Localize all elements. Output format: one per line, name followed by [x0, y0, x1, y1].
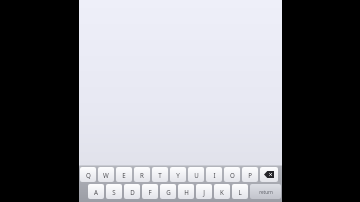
staticText: Q [86, 171, 91, 179]
button[interactable]: T [152, 167, 168, 182]
button[interactable]: O [224, 167, 240, 182]
button[interactable]: U [188, 167, 204, 182]
button[interactable]: W [98, 167, 114, 182]
button[interactable]: G [160, 184, 176, 199]
staticText: T [158, 171, 162, 179]
staticText: K [220, 188, 224, 196]
staticText: return [259, 189, 273, 195]
button[interactable]: R [134, 167, 150, 182]
staticText: W [103, 171, 109, 179]
button[interactable]: J [196, 184, 212, 199]
staticText: R [140, 171, 144, 179]
staticText: P [248, 171, 252, 179]
staticText: G [166, 188, 171, 196]
staticText: S [112, 188, 116, 196]
button[interactable]: Q [80, 167, 96, 182]
button[interactable]: Backspace [260, 167, 278, 182]
button[interactable]: S [106, 184, 122, 199]
staticText: J [203, 188, 205, 196]
staticText: H [184, 188, 189, 196]
button[interactable]: I [206, 167, 222, 182]
button[interactable]: E [116, 167, 132, 182]
staticText: O [230, 171, 235, 179]
staticText: U [194, 171, 199, 179]
staticText: I [213, 171, 216, 179]
button[interactable]: L [232, 184, 248, 199]
button[interactable]: P [242, 167, 258, 182]
button[interactable]: A [88, 184, 104, 199]
button[interactable]: return [250, 184, 281, 199]
staticText: L [238, 188, 242, 196]
button[interactable]: Y [170, 167, 186, 182]
button[interactable]: H [178, 184, 194, 199]
staticText: E [122, 171, 126, 179]
staticText: A [94, 188, 98, 196]
button[interactable]: D [124, 184, 140, 199]
staticText: D [130, 188, 135, 196]
button[interactable]: K [214, 184, 230, 199]
staticText: Y [176, 171, 180, 179]
button[interactable]: F [142, 184, 158, 199]
staticText: F [148, 188, 152, 196]
